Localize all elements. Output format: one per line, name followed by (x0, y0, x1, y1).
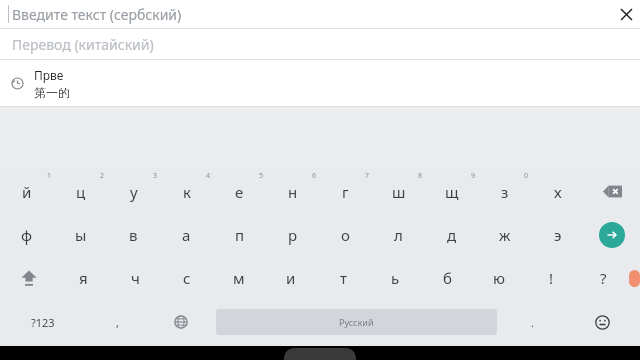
button[interactable]: о (319, 213, 372, 256)
button[interactable]: а (160, 213, 213, 256)
button[interactable]: э (531, 213, 584, 256)
button[interactable]: г (319, 170, 372, 213)
staticText: п (235, 225, 245, 245)
staticText: 4 (206, 171, 211, 181)
staticText: 6 (312, 171, 317, 181)
staticText: Прве (34, 67, 64, 83)
button[interactable]: Voice (629, 270, 640, 287)
button[interactable]: д (425, 213, 478, 256)
button[interactable]: ч (109, 256, 161, 300)
button[interactable]: и (265, 256, 317, 300)
button[interactable]: х (531, 170, 584, 213)
staticText: Введите текст (сербский) (12, 5, 182, 24)
staticText: т (340, 268, 347, 288)
button[interactable]: Введите текст (сербский) (0, 0, 640, 28)
staticText: ?123 (31, 315, 55, 330)
button[interactable]: л (372, 213, 425, 256)
button[interactable]: Close (612, 0, 640, 28)
staticText: щ (445, 182, 459, 202)
staticText: 3 (153, 171, 158, 181)
button[interactable]: р (266, 213, 319, 256)
button[interactable]: ь (369, 256, 421, 300)
staticText: 2 (100, 171, 105, 181)
staticText: . (531, 315, 534, 330)
button[interactable]: . (500, 300, 564, 344)
staticText: к (183, 182, 191, 202)
button[interactable]: в (107, 213, 160, 256)
staticText: р (288, 225, 298, 245)
staticText: 第一的 (34, 85, 70, 100)
button[interactable]: ф (0, 213, 54, 256)
staticText: 1 (47, 171, 52, 181)
button[interactable]: ?123 (0, 300, 85, 344)
staticText: з (501, 182, 509, 202)
staticText: э (554, 225, 562, 245)
button[interactable]: Backspace (584, 170, 640, 213)
staticText: 7 (365, 171, 370, 181)
staticText: ! (549, 268, 554, 288)
staticText: ы (75, 225, 87, 245)
staticText: ж (499, 225, 511, 245)
staticText: , (116, 315, 119, 330)
button[interactable]: ж (478, 213, 531, 256)
button[interactable]: п (213, 213, 266, 256)
button[interactable]: с (161, 256, 213, 300)
staticText: 5 (259, 171, 264, 181)
button[interactable]: к (160, 170, 213, 213)
button[interactable]: Change language (149, 300, 213, 344)
button[interactable]: , (85, 300, 149, 344)
staticText: ь (391, 268, 400, 288)
button[interactable]: ы (54, 213, 107, 256)
button[interactable]: т (317, 256, 369, 300)
button[interactable]: з (478, 170, 531, 213)
staticText: Русский (339, 316, 374, 328)
button[interactable]: ! (525, 256, 577, 300)
button[interactable]: у (107, 170, 160, 213)
button[interactable]: б (421, 256, 473, 300)
button[interactable]: я (57, 256, 109, 300)
staticText: 8 (418, 171, 423, 181)
staticText: 0 (524, 171, 529, 181)
staticText: м (233, 268, 245, 288)
button[interactable]: Прве (0, 60, 640, 106)
button[interactable]: Emoji (564, 300, 640, 344)
staticText: 9 (471, 171, 476, 181)
staticText: ш (392, 182, 406, 202)
staticText: ч (131, 268, 140, 288)
button[interactable]: н (266, 170, 319, 213)
staticText: й (22, 182, 32, 202)
staticText: а (182, 225, 191, 245)
button[interactable]: ш (372, 170, 425, 213)
staticText: г (342, 182, 349, 202)
staticText: ? (600, 268, 607, 288)
staticText: и (286, 268, 296, 288)
staticText: д (447, 225, 457, 245)
staticText: с (183, 268, 191, 288)
button[interactable]: Shift (0, 256, 57, 300)
button[interactable]: е (213, 170, 266, 213)
button[interactable]: й (0, 170, 54, 213)
button[interactable]: ц (54, 170, 107, 213)
button[interactable]: ? (577, 256, 629, 300)
staticText: ю (493, 268, 505, 288)
staticText: е (235, 182, 244, 202)
staticText: о (341, 225, 350, 245)
staticText: у (130, 182, 138, 202)
staticText: ц (76, 182, 86, 202)
button[interactable]: м (213, 256, 265, 300)
staticText: ф (21, 225, 33, 245)
staticText: л (394, 225, 403, 245)
staticText: я (79, 268, 88, 288)
staticText: Перевод (китайский) (12, 35, 154, 54)
button[interactable]: ю (473, 256, 525, 300)
button[interactable]: щ (425, 170, 478, 213)
staticText: б (443, 268, 452, 288)
staticText: х (554, 182, 562, 202)
staticText: в (129, 225, 138, 245)
button[interactable]: Enter (584, 213, 640, 256)
button[interactable]: Русский (216, 309, 497, 335)
button[interactable]: Перевод (китайский) (0, 29, 640, 59)
staticText: н (288, 182, 298, 202)
